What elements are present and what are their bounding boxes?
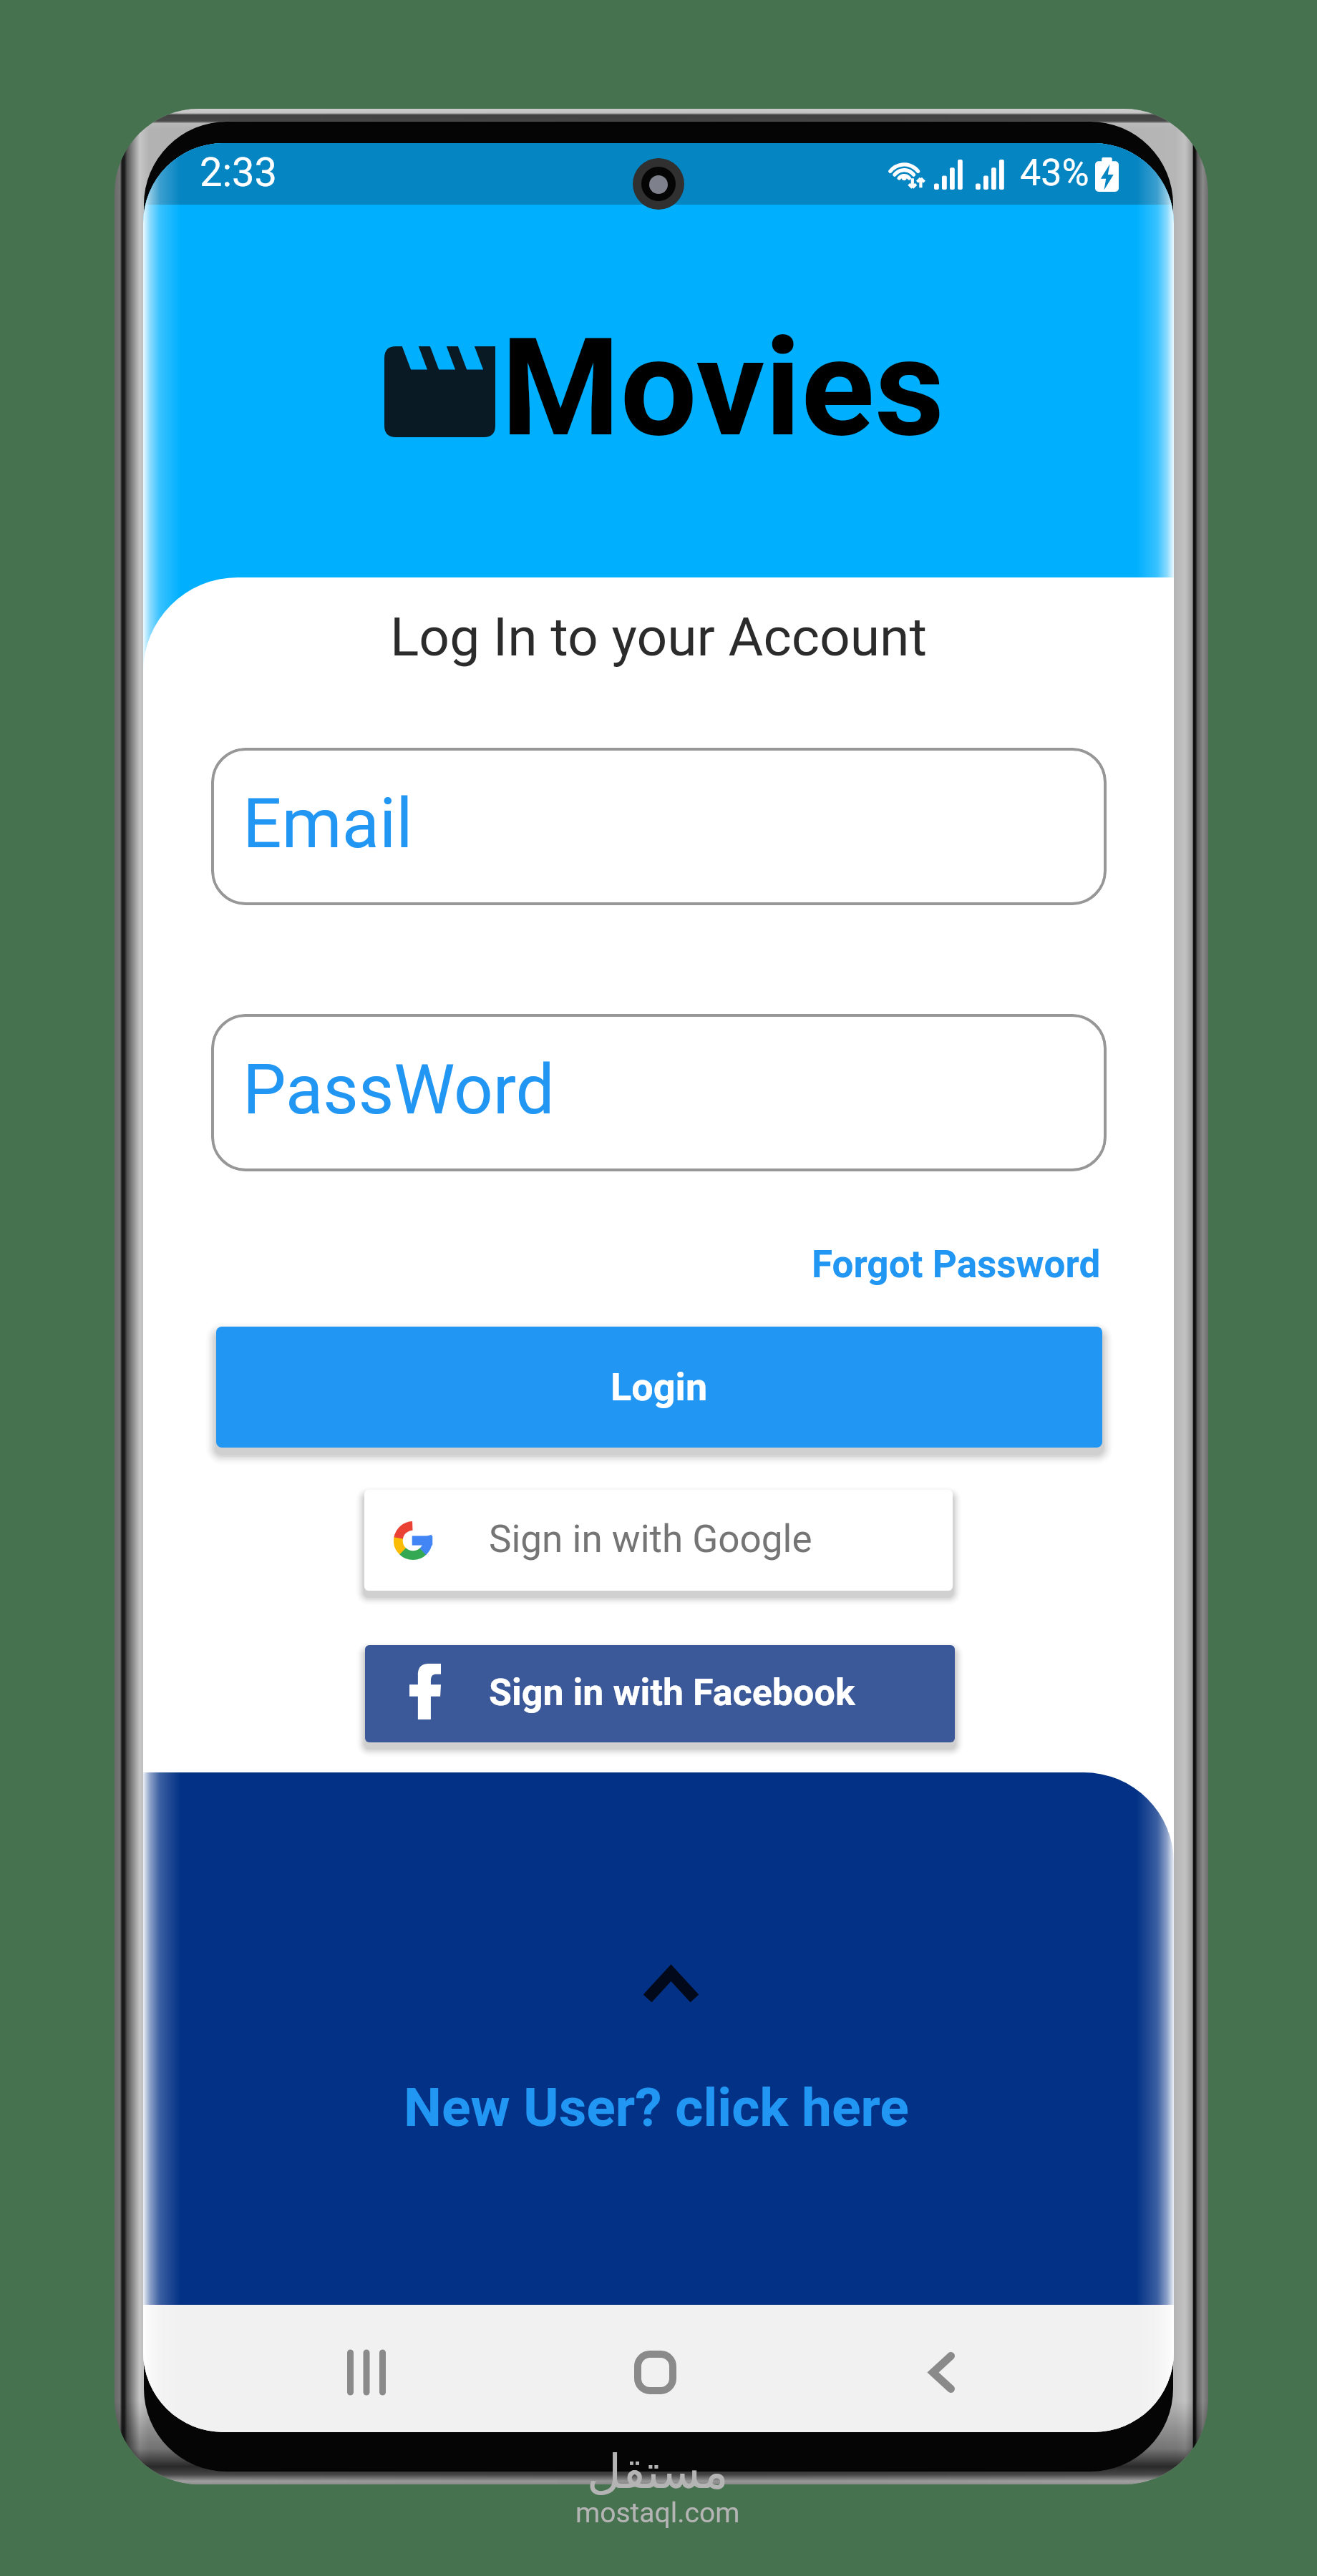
button[interactable]: Recents — [324, 2329, 409, 2415]
button[interactable]: New User? click here — [143, 1772, 1174, 2305]
staticText: Email — [243, 784, 413, 864]
staticText: Forgot Password — [812, 1242, 1101, 1287]
staticText: Movies — [501, 308, 945, 468]
staticText: Login — [611, 1365, 708, 1410]
button[interactable]: Sign in with Google — [364, 1490, 953, 1591]
staticText: Log In to your Account — [143, 605, 1174, 668]
staticText: 43% — [1020, 151, 1089, 195]
staticText: Sign in with Facebook — [489, 1671, 855, 1714]
staticText: PassWord — [243, 1050, 555, 1131]
button[interactable]: Email — [211, 748, 1107, 905]
button[interactable]: Back — [899, 2329, 985, 2415]
button[interactable]: PassWord — [211, 1014, 1107, 1171]
staticText: 2:33 — [200, 149, 277, 196]
staticText: New User? click here — [404, 2076, 909, 2139]
staticText: Sign in with Google — [489, 1517, 812, 1561]
button[interactable]: Forgot Password — [787, 1229, 1101, 1300]
button[interactable]: Sign in with Facebook — [365, 1645, 955, 1742]
staticText: مستقل — [587, 2444, 729, 2499]
staticText: mostaql.com — [575, 2497, 740, 2529]
button[interactable]: Login — [216, 1327, 1102, 1448]
button[interactable]: Home — [612, 2329, 698, 2415]
